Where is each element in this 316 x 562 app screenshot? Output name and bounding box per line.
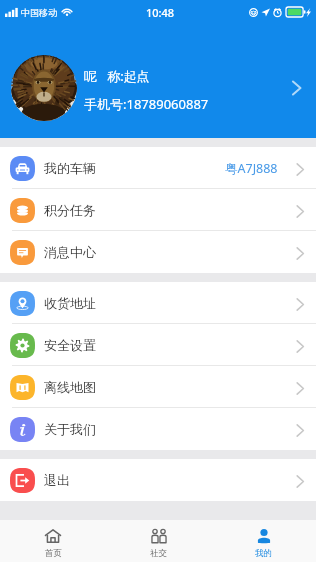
button[interactable]: 退出 xyxy=(0,459,316,501)
staticText: 首页 xyxy=(45,548,62,559)
button[interactable]: 关于我们 xyxy=(0,408,316,450)
staticText: 10:48 xyxy=(146,5,175,20)
button[interactable]: 社交 xyxy=(106,524,211,559)
button[interactable]: 我的 xyxy=(211,524,316,559)
button[interactable]: 积分任务 xyxy=(0,189,316,231)
staticText: 消息中心 xyxy=(44,244,96,260)
staticText: 退出 xyxy=(44,472,70,488)
staticText: 收货地址 xyxy=(44,295,96,311)
button[interactable]: 收货地址 xyxy=(0,282,316,324)
staticText: 中国移动 xyxy=(21,7,57,18)
staticText: 手机号:18789060887 xyxy=(84,95,209,113)
staticText: 我的车辆 xyxy=(44,160,96,176)
staticText: 离线地图 xyxy=(44,379,96,395)
other: 个人资料 xyxy=(287,76,305,100)
staticText: 我的 xyxy=(255,548,272,559)
button[interactable]: 呢 称:起点 xyxy=(0,24,316,138)
button[interactable]: 首页 xyxy=(0,524,106,559)
staticText: 呢 称:起点 xyxy=(84,67,150,85)
staticText: 关于我们 xyxy=(44,421,96,437)
button[interactable]: 消息中心 xyxy=(0,231,316,273)
staticText: 粤A7J888 xyxy=(225,160,278,177)
staticText: 积分任务 xyxy=(44,202,96,218)
button[interactable]: 离线地图 xyxy=(0,366,316,408)
staticText: 安全设置 xyxy=(44,337,96,353)
button[interactable]: 我的车辆 xyxy=(0,147,316,189)
staticText: 社交 xyxy=(150,548,167,559)
button[interactable]: 安全设置 xyxy=(0,324,316,366)
